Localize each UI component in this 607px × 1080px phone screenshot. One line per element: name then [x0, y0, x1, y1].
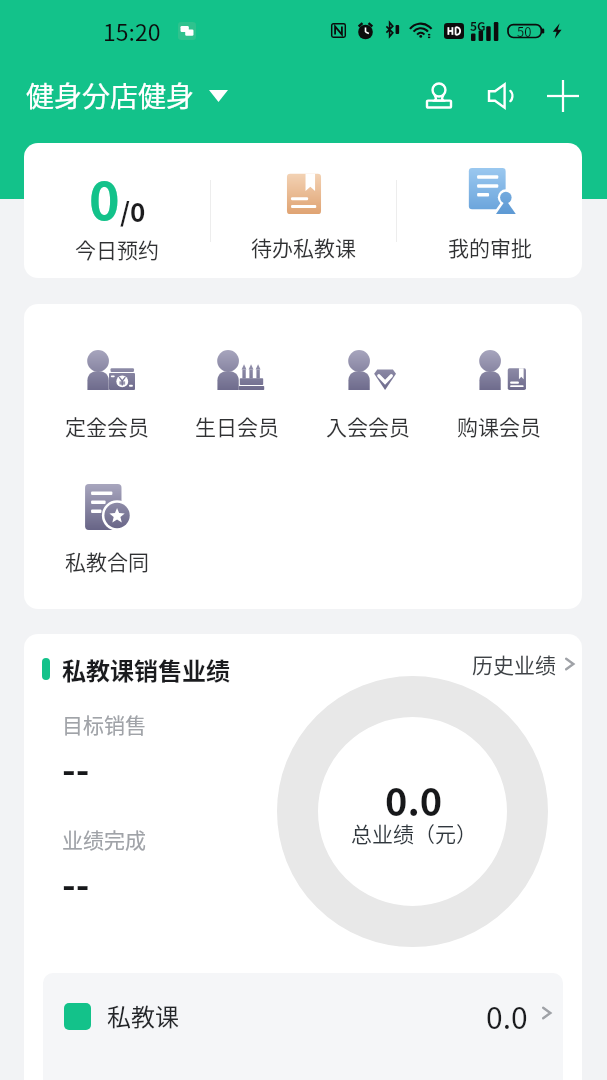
- staticText: 50: [517, 22, 532, 40]
- staticText: 私教课: [107, 998, 179, 1033]
- button[interactable]: 购课会员: [433, 349, 564, 441]
- staticText: 私教合同: [65, 546, 149, 576]
- staticText: 0: [89, 160, 120, 235]
- staticText: 今日预约: [75, 234, 159, 264]
- staticText: 目标销售: [62, 709, 146, 739]
- button[interactable]: 历史业绩: [472, 650, 576, 688]
- button[interactable]: 0: [24, 143, 210, 278]
- staticText: 0.0: [385, 772, 443, 827]
- staticText: /0: [120, 192, 146, 230]
- staticText: 定金会员: [65, 411, 149, 441]
- staticText: 15:20: [103, 14, 161, 47]
- button[interactable]: Add: [541, 74, 585, 118]
- staticText: --: [62, 741, 90, 795]
- button[interactable]: 定金会员: [42, 349, 172, 441]
- staticText: 购课会员: [457, 411, 541, 441]
- staticText: 生日会员: [195, 411, 279, 441]
- staticText: 0.0: [486, 994, 528, 1037]
- staticText: 业绩完成: [62, 824, 146, 854]
- staticText: 入会会员: [326, 411, 410, 441]
- staticText: 我的审批: [448, 232, 532, 262]
- button[interactable]: 私教课: [43, 973, 563, 1080]
- button[interactable]: 私教合同: [42, 484, 172, 576]
- staticText: 待办私教课: [251, 232, 356, 262]
- button[interactable]: Announcements: [479, 74, 523, 118]
- button[interactable]: 入会会员: [302, 349, 433, 441]
- button[interactable]: 健身分店健身: [26, 67, 228, 124]
- staticText: 健身分店健身: [26, 75, 195, 116]
- staticText: 5G: [470, 17, 486, 34]
- button[interactable]: Member check-in: [417, 74, 461, 118]
- button[interactable]: 待办私教课: [211, 143, 396, 278]
- button[interactable]: 生日会员: [172, 349, 302, 441]
- staticText: --: [62, 856, 90, 910]
- staticText: 总业绩（元）: [351, 818, 477, 848]
- staticText: 历史业绩: [472, 649, 556, 679]
- button[interactable]: 我的审批: [397, 143, 582, 278]
- staticText: 私教课销售业绩: [62, 652, 230, 687]
